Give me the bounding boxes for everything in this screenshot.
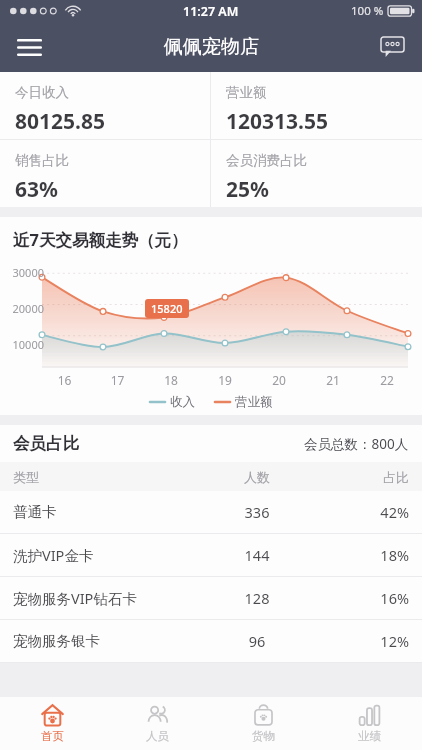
staticText: 普通卡 xyxy=(13,503,203,521)
button[interactable]: 宠物服务VIP钻石卡 xyxy=(0,577,422,619)
staticText: 洗护VIP金卡 xyxy=(13,545,203,565)
staticText: 今日收入 xyxy=(15,84,69,101)
staticText: 63% xyxy=(15,175,58,204)
staticText: 16% xyxy=(311,588,409,608)
staticText: 人员 xyxy=(146,729,169,743)
staticText: 100 % xyxy=(351,3,384,19)
staticText: 宠物服务银卡 xyxy=(13,632,203,650)
staticText: 18 xyxy=(144,372,198,388)
staticText: 首页 xyxy=(41,729,64,743)
button[interactable]: 货物 xyxy=(210,697,316,750)
staticText: 18% xyxy=(311,545,409,565)
staticText: 80125.85 xyxy=(15,107,105,136)
button[interactable]: 首页 xyxy=(0,697,105,750)
staticText: 120313.55 xyxy=(226,107,328,136)
staticText: 42% xyxy=(311,502,409,522)
staticText: 21 xyxy=(306,372,360,388)
staticText: 25% xyxy=(226,175,269,204)
staticText: 16 xyxy=(38,372,91,388)
staticText: 佩佩宠物店 xyxy=(164,35,259,59)
button[interactable]: 营业额 xyxy=(211,72,422,139)
staticText: 10000 xyxy=(4,337,44,352)
staticText: 会员占比 xyxy=(13,433,79,454)
button[interactable]: 洗护VIP金卡 xyxy=(0,534,422,576)
staticText: 会员消费占比 xyxy=(226,152,307,169)
staticText: 17 xyxy=(91,372,144,388)
button[interactable]: Messages xyxy=(372,27,412,67)
staticText: 30000 xyxy=(4,265,44,280)
button[interactable]: 人员 xyxy=(105,697,210,750)
staticText: 近7天交易额走势（元） xyxy=(13,228,188,251)
button[interactable]: 普通卡 xyxy=(0,491,422,533)
staticText: 类型 xyxy=(13,469,203,485)
staticText: 营业额 xyxy=(235,394,273,410)
staticText: 96 xyxy=(203,631,311,651)
staticText: 12% xyxy=(311,631,409,651)
staticText: 销售占比 xyxy=(15,152,69,169)
button[interactable]: 今日收入 xyxy=(0,72,210,139)
staticText: 收入 xyxy=(170,394,195,410)
staticText: 货物 xyxy=(252,729,275,743)
staticText: 20 xyxy=(252,372,306,388)
staticText: 会员总数：800人 xyxy=(304,435,409,453)
staticText: 20000 xyxy=(4,301,44,316)
staticText: 宠物服务VIP钻石卡 xyxy=(13,588,203,608)
staticText: 15820 xyxy=(151,301,183,316)
staticText: 22 xyxy=(360,372,414,388)
staticText: 11:27 AM xyxy=(183,3,239,20)
button[interactable]: Menu xyxy=(6,24,52,70)
button[interactable]: 会员消费占比 xyxy=(211,140,422,207)
button[interactable]: 收入 xyxy=(150,394,195,410)
staticText: 业绩 xyxy=(358,729,381,743)
button[interactable]: 业绩 xyxy=(316,697,422,750)
staticText: 19 xyxy=(198,372,252,388)
staticText: 人数 xyxy=(203,469,311,485)
button[interactable]: 营业额 xyxy=(215,394,273,410)
staticText: 营业额 xyxy=(226,84,267,101)
button[interactable]: 销售占比 xyxy=(0,140,210,207)
button[interactable]: 宠物服务银卡 xyxy=(0,620,422,662)
staticText: 128 xyxy=(203,588,311,608)
staticText: 144 xyxy=(203,545,311,565)
staticText: 占比 xyxy=(311,469,409,485)
staticText: 336 xyxy=(203,502,311,522)
